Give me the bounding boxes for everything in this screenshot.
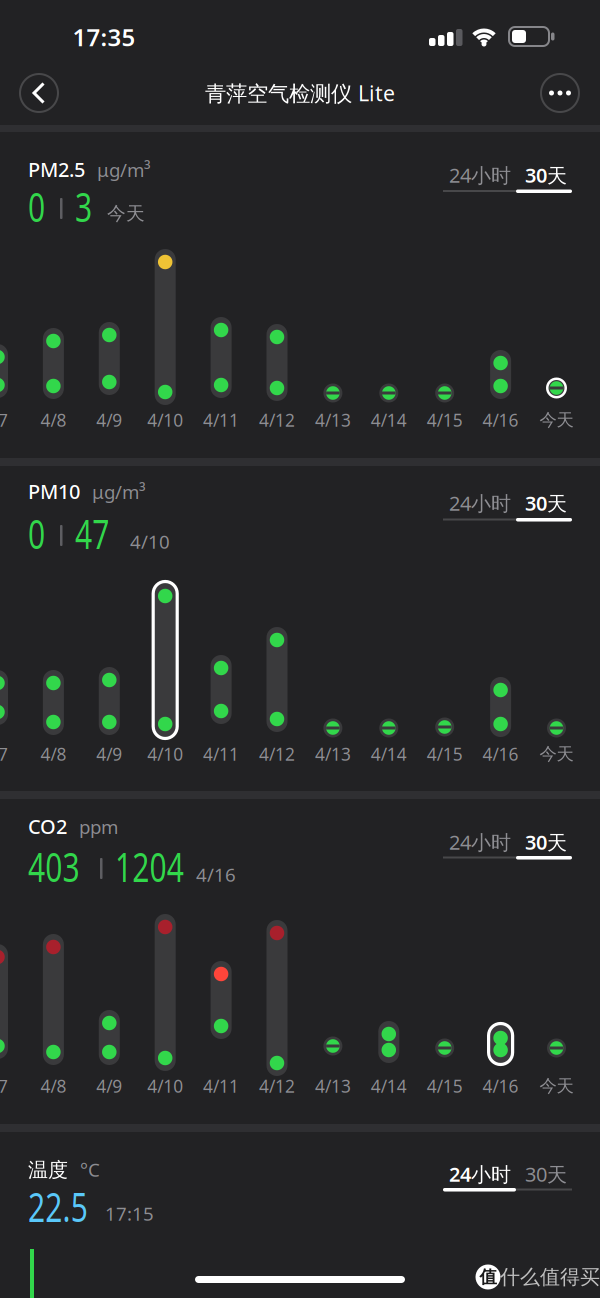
staticText: 24小时 xyxy=(449,1161,511,1187)
staticText: 4/12 xyxy=(259,1074,295,1097)
staticText: 4/10 xyxy=(147,1074,183,1097)
staticText: 1204 xyxy=(115,840,207,893)
staticText: 青萍空气检测仪 Lite xyxy=(205,79,395,107)
staticText: 4/16 xyxy=(483,1074,519,1097)
staticText: 30天 xyxy=(525,162,567,188)
button[interactable]: 24小时 xyxy=(449,162,511,188)
button[interactable]: 24小时 xyxy=(449,1161,511,1187)
button[interactable]: 24小时 xyxy=(449,829,511,855)
staticText: 4/16 xyxy=(483,742,519,765)
staticText: 24小时 xyxy=(449,162,511,188)
staticText: μg/m³ xyxy=(92,479,146,504)
staticText: PM2.5 xyxy=(28,156,85,183)
staticText: 4/16 xyxy=(483,408,519,431)
staticText: 4/14 xyxy=(371,742,407,765)
staticText: 4/11 xyxy=(203,742,239,765)
staticText: 今天 xyxy=(539,409,573,431)
staticText: 17:15 xyxy=(105,1201,154,1226)
button[interactable]: 30天 xyxy=(525,829,567,855)
staticText: °C xyxy=(80,1157,100,1182)
staticText: 4/12 xyxy=(259,408,295,431)
staticText: CO2 xyxy=(28,813,67,840)
staticText: 4/8 xyxy=(40,1074,66,1097)
button[interactable]: Back xyxy=(20,74,58,112)
staticText: 4/13 xyxy=(315,408,351,431)
staticText: 24小时 xyxy=(449,829,511,855)
staticText: 4/13 xyxy=(315,742,351,765)
staticText: 4/9 xyxy=(96,742,122,765)
staticText: 30天 xyxy=(525,490,567,516)
staticText: 0 xyxy=(28,180,51,233)
button[interactable]: 30天 xyxy=(525,490,567,516)
staticText: 30天 xyxy=(525,829,567,855)
staticText: 什么值得买 xyxy=(500,1265,600,1289)
staticText: μg/m³ xyxy=(97,157,151,182)
staticText: 7 xyxy=(0,408,8,431)
staticText: 4/10 xyxy=(130,529,170,554)
staticText: 24小时 xyxy=(449,490,511,516)
staticText: 4/11 xyxy=(203,1074,239,1097)
staticText: 4/15 xyxy=(427,408,463,431)
staticText: 22.5 xyxy=(28,1180,108,1233)
button[interactable]: 24小时 xyxy=(449,490,511,516)
staticText: 今天 xyxy=(107,202,145,225)
staticText: 47 xyxy=(75,507,121,560)
staticText: 4/12 xyxy=(259,742,295,765)
staticText: 4/10 xyxy=(147,408,183,431)
staticText: 4/8 xyxy=(40,408,66,431)
staticText: 4/15 xyxy=(427,1074,463,1097)
staticText: 4/13 xyxy=(315,1074,351,1097)
staticText: 4/9 xyxy=(96,408,122,431)
staticText: 4/10 xyxy=(147,742,183,765)
staticText: 4/16 xyxy=(196,862,236,887)
staticText: 4/14 xyxy=(371,1074,407,1097)
staticText: 403 xyxy=(28,840,97,893)
staticText: 4/9 xyxy=(96,1074,122,1097)
staticText: 温度 xyxy=(28,1158,68,1182)
staticText: PM10 xyxy=(28,478,80,505)
staticText: 今天 xyxy=(539,743,573,765)
staticText: 3 xyxy=(75,180,98,233)
staticText: 今天 xyxy=(539,1075,573,1097)
staticText: 值 xyxy=(479,1266,496,1288)
staticText: 4/8 xyxy=(40,742,66,765)
button[interactable]: 30天 xyxy=(525,1161,567,1187)
staticText: ppm xyxy=(79,814,118,839)
staticText: 0 xyxy=(28,507,51,560)
staticText: 30天 xyxy=(525,1161,567,1187)
staticText: 7 xyxy=(0,742,8,765)
staticText: 4/14 xyxy=(371,408,407,431)
button[interactable]: More xyxy=(541,74,579,112)
staticText: 4/11 xyxy=(203,408,239,431)
staticText: 17:35 xyxy=(72,21,135,53)
staticText: 4/15 xyxy=(427,742,463,765)
staticText: 7 xyxy=(0,1074,8,1097)
button[interactable]: 30天 xyxy=(525,162,567,188)
